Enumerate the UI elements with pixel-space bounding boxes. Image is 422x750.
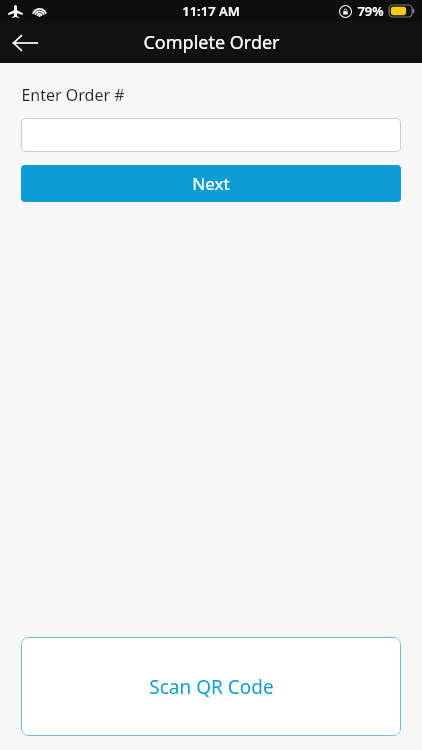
staticText: Complete Order	[143, 30, 280, 55]
button[interactable]: Back	[4, 22, 46, 63]
button[interactable]: Scan QR Code	[21, 637, 401, 736]
staticText: 11:17 AM	[182, 2, 240, 20]
staticText: Scan QR Code	[149, 674, 274, 700]
staticText: Next	[192, 172, 230, 195]
staticText: Enter Order #	[21, 84, 125, 106]
button[interactable]: Order number input	[21, 118, 401, 152]
staticText: 79%	[357, 2, 384, 20]
button[interactable]: Next	[21, 165, 401, 202]
